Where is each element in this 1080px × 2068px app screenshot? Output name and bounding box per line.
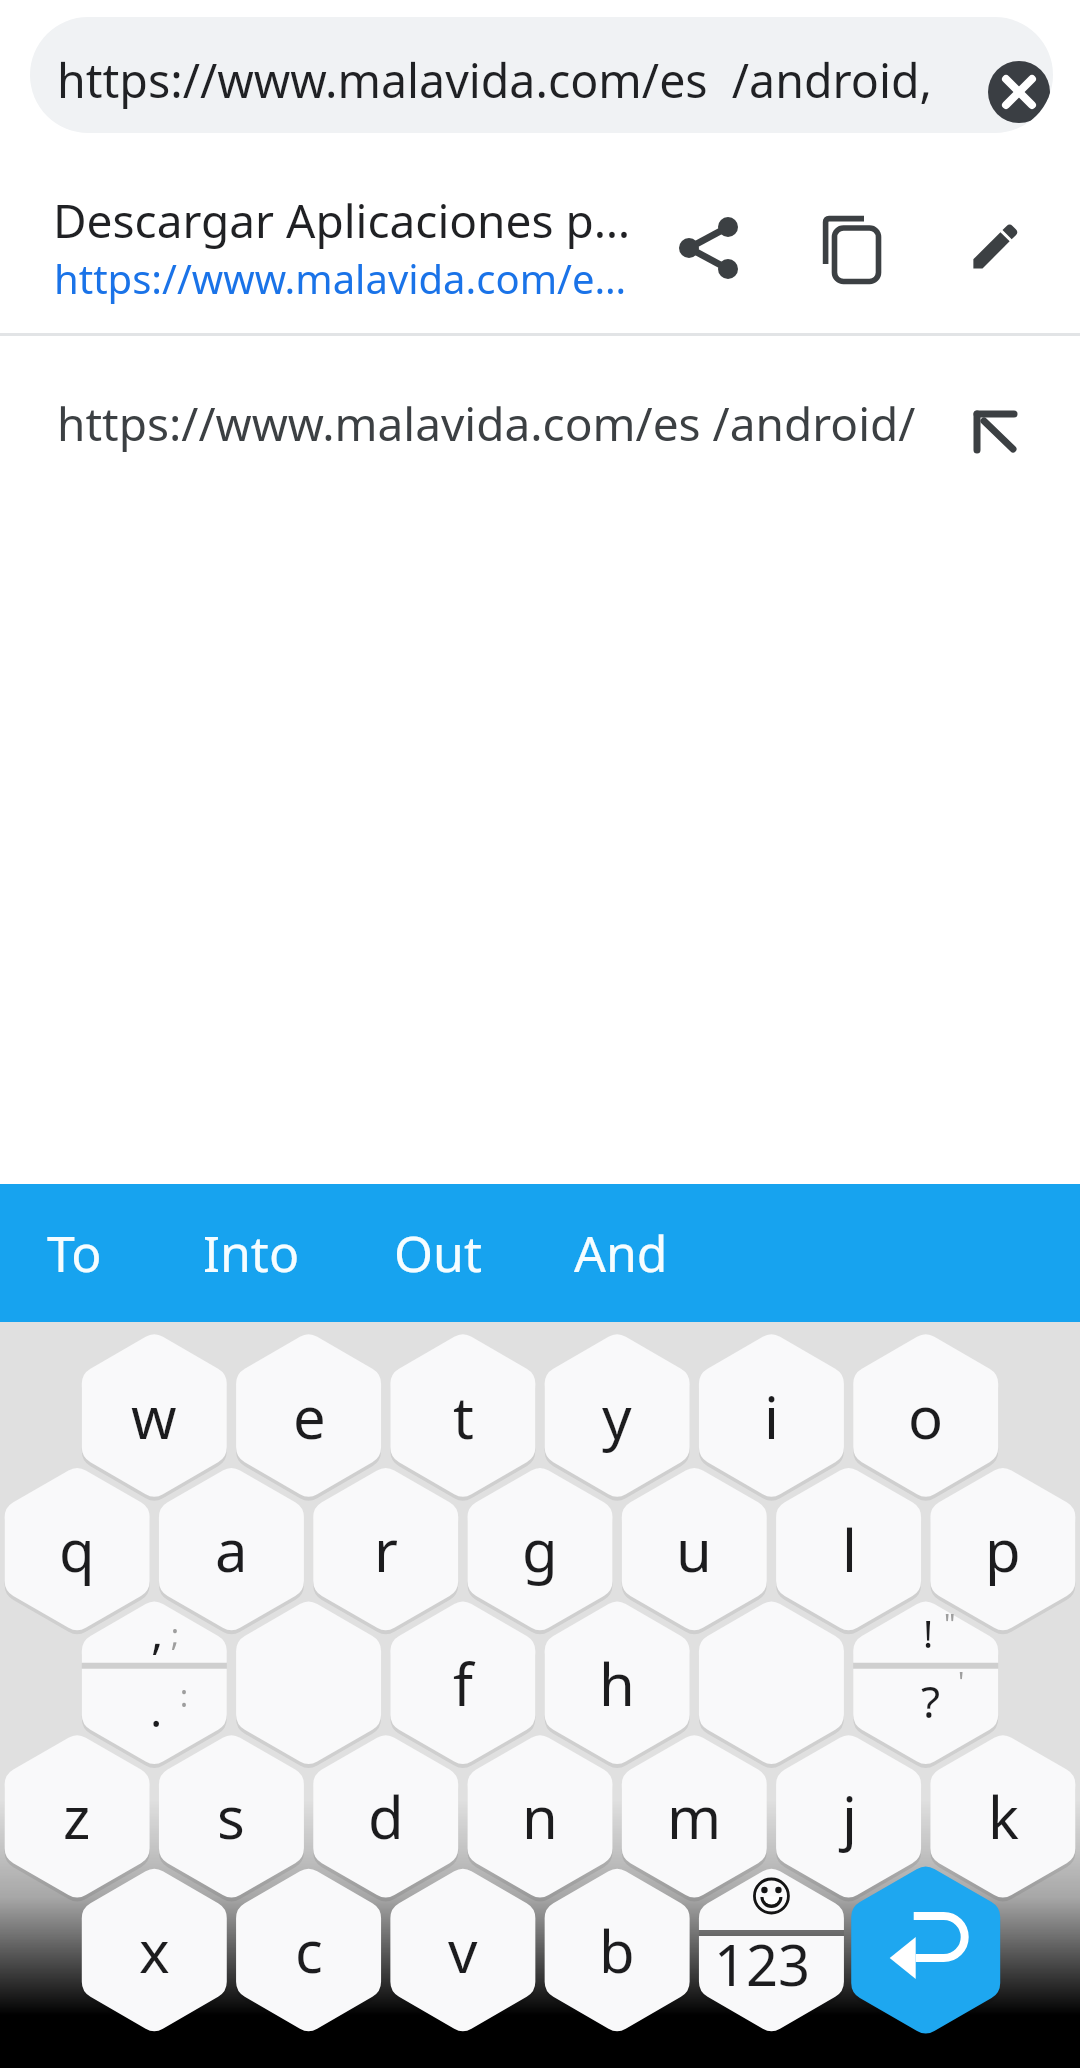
button[interactable]: x: [81, 1866, 227, 2034]
staticText: Descargar Aplicaciones p…: [53, 189, 631, 252]
button[interactable]: t: [390, 1332, 536, 1500]
button[interactable]: 123: [698, 1866, 844, 2034]
staticText: m: [667, 1777, 722, 1856]
button[interactable]: d: [313, 1732, 459, 1900]
button[interactable]: [951, 383, 1041, 473]
button[interactable]: g: [467, 1465, 613, 1633]
button[interactable]: s: [158, 1732, 304, 1900]
button[interactable]: n: [467, 1732, 613, 1900]
button[interactable]: q: [4, 1465, 150, 1633]
button[interactable]: [807, 205, 897, 295]
button[interactable]: l: [776, 1465, 922, 1633]
staticText: https://www.malavida.com/e…: [54, 251, 627, 305]
button[interactable]: [236, 1599, 382, 1767]
button[interactable]: h: [544, 1599, 690, 1767]
staticText: ;: [171, 1614, 180, 1655]
staticText: p: [985, 1510, 1021, 1589]
staticText: o: [908, 1377, 944, 1456]
staticText: v: [448, 1911, 478, 1990]
button[interactable]: j: [776, 1732, 922, 1900]
button[interactable]: [0, 170, 1080, 333]
button[interactable]: v: [390, 1866, 536, 2034]
staticText: y: [602, 1377, 632, 1456]
staticText: ': [958, 1662, 965, 1700]
staticText: https://www.malavida.com/es /android/: [57, 392, 916, 455]
button[interactable]: [81, 1599, 227, 1767]
staticText: ?: [921, 1671, 941, 1731]
button[interactable]: f: [390, 1599, 536, 1767]
button[interactable]: r: [313, 1465, 459, 1633]
staticText: z: [63, 1777, 91, 1856]
staticText: To: [47, 1219, 102, 1287]
staticText: d: [368, 1777, 404, 1856]
button[interactable]: o: [853, 1332, 999, 1500]
button[interactable]: [988, 61, 1050, 123]
button[interactable]: a: [158, 1465, 304, 1633]
staticText: k: [988, 1777, 1019, 1856]
staticText: r: [374, 1510, 398, 1589]
button[interactable]: p: [930, 1465, 1076, 1633]
button[interactable]: https://www.malavida.com/es /android,: [30, 17, 1053, 133]
staticText: b: [599, 1911, 635, 1990]
staticText: x: [139, 1911, 170, 1990]
button[interactable]: [851, 1864, 1001, 2036]
staticText: e: [293, 1377, 326, 1456]
staticText: ": [944, 1604, 956, 1642]
staticText: ,: [151, 1600, 164, 1663]
staticText: https://www.malavida.com/es /android,: [57, 48, 932, 111]
staticText: n: [522, 1777, 558, 1856]
staticText: q: [59, 1510, 95, 1589]
staticText: Into: [203, 1219, 300, 1287]
button[interactable]: w: [81, 1332, 227, 1500]
staticText: l: [842, 1510, 857, 1589]
button[interactable]: k: [930, 1732, 1076, 1900]
button[interactable]: e: [236, 1332, 382, 1500]
button[interactable]: And: [574, 1184, 668, 1322]
staticText: t: [453, 1377, 474, 1456]
button[interactable]: z: [4, 1732, 150, 1900]
staticText: !: [923, 1607, 934, 1659]
staticText: :: [180, 1675, 189, 1716]
staticText: w: [131, 1377, 177, 1456]
button[interactable]: [853, 1599, 999, 1767]
staticText: f: [453, 1644, 473, 1723]
staticText: s: [217, 1777, 245, 1856]
button[interactable]: y: [544, 1332, 690, 1500]
button[interactable]: To: [47, 1184, 102, 1322]
staticText: c: [295, 1911, 323, 1990]
button[interactable]: Into: [203, 1184, 300, 1322]
button[interactable]: [0, 350, 1080, 500]
button[interactable]: u: [621, 1465, 767, 1633]
staticText: i: [764, 1377, 779, 1456]
button[interactable]: i: [698, 1332, 844, 1500]
staticText: 123: [714, 1926, 811, 2002]
staticText: And: [574, 1219, 668, 1287]
staticText: .: [150, 1678, 163, 1741]
button[interactable]: [950, 205, 1040, 295]
button[interactable]: [662, 204, 752, 294]
button[interactable]: [698, 1599, 844, 1767]
staticText: Out: [394, 1219, 482, 1287]
button[interactable]: c: [236, 1866, 382, 2034]
staticText: j: [842, 1777, 857, 1856]
button[interactable]: Out: [394, 1184, 482, 1322]
staticText: g: [522, 1510, 558, 1589]
button[interactable]: m: [621, 1732, 767, 1900]
staticText: h: [599, 1644, 635, 1723]
staticText: a: [215, 1510, 248, 1589]
staticText: u: [676, 1510, 712, 1589]
button[interactable]: b: [544, 1866, 690, 2034]
